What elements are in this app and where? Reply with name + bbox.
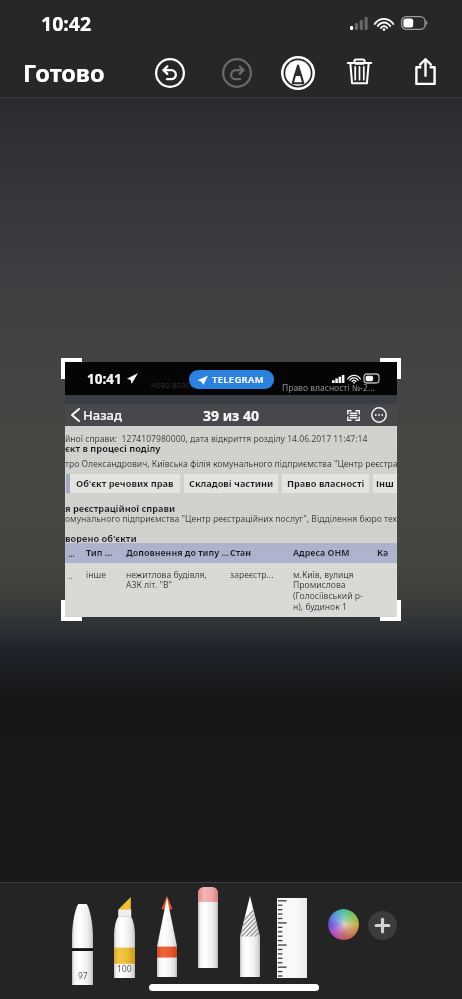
staticText: 100: [117, 963, 132, 975]
staticText: Об'єкт речових прав: [76, 477, 174, 490]
staticText: зареєстр...: [230, 569, 274, 581]
button[interactable]: Delete: [336, 48, 382, 94]
button[interactable]: Eraser: [198, 887, 218, 968]
staticText: тро Олександрович, Київська філія комуна…: [65, 458, 397, 470]
staticText: 10:42: [41, 10, 92, 37]
staticText: Право власності №-2...: [282, 382, 375, 394]
button[interactable]: Undo: [147, 50, 193, 96]
button[interactable]: Share: [402, 48, 448, 94]
staticText: Стан: [230, 547, 252, 559]
button[interactable]: Lasso: [240, 896, 260, 977]
button[interactable]: Highlighter: [114, 897, 135, 978]
button[interactable]: Pen: [72, 904, 93, 985]
button[interactable]: Add: [368, 911, 397, 940]
button[interactable]: Markup tools: [275, 50, 321, 96]
staticText: омунального підприємства "Центр реєстрац…: [65, 513, 397, 525]
staticText: єкт в процесі поділу: [65, 442, 161, 455]
button[interactable]: Ruler: [277, 898, 307, 978]
staticText: Право власності: [287, 477, 365, 490]
staticText: Ка: [377, 547, 389, 559]
button[interactable]: Готово: [9, 48, 119, 98]
staticText: Назад: [83, 406, 122, 424]
staticText: 10:41: [87, 370, 122, 388]
staticText: Складові частини: [189, 477, 274, 490]
staticText: нежитлова будівля, АЗК літ. "В": [126, 569, 230, 591]
staticText: Готово: [23, 57, 105, 89]
staticText: ворено об'єкти: [65, 532, 137, 545]
staticText: Тип ...: [86, 547, 113, 559]
staticText: інше: [86, 569, 106, 581]
staticText: 39 из 40: [203, 406, 259, 425]
staticText: йної справи: 1274107980000, дата відкрит…: [65, 433, 368, 445]
button[interactable]: Colour: [328, 909, 359, 940]
staticText: ...: [68, 548, 75, 559]
staticText: ново власності №-2...: [151, 379, 233, 390]
button[interactable]: Redo: [214, 50, 260, 96]
staticText: Інш: [376, 477, 394, 490]
staticText: ..: [68, 570, 73, 581]
staticText: м.Київ, вулиця Промислова (Голосіївський…: [293, 569, 377, 613]
staticText: 97: [78, 970, 88, 982]
staticText: TELEGRAM: [212, 373, 264, 386]
staticText: Адреса ОНМ: [293, 547, 350, 559]
staticText: я реєстраційної справи: [65, 502, 176, 515]
button[interactable]: Pencil: [157, 896, 177, 977]
staticText: Доповнення до типу ...: [126, 547, 229, 559]
